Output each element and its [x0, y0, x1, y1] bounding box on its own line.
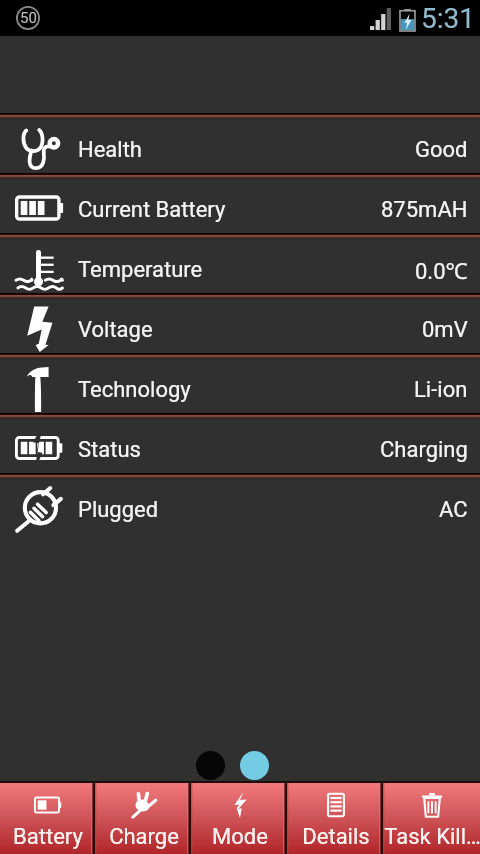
button[interactable]: Page 1 [196, 751, 225, 780]
staticText: Current Battery [78, 197, 226, 223]
staticText: Mode [212, 824, 268, 850]
staticText: Status [78, 437, 141, 463]
staticText: 50 [20, 9, 37, 27]
staticText: AC [439, 497, 468, 523]
button[interactable]: Temperature [0, 239, 480, 293]
button[interactable]: Status [0, 419, 480, 473]
staticText: 5:31 [421, 2, 475, 35]
staticText: Voltage [78, 317, 153, 343]
staticText: Battery [13, 824, 83, 850]
staticText: Task Kill… [384, 824, 480, 850]
staticText: Good [415, 137, 468, 163]
other: Mode [226, 791, 254, 819]
staticText: Technology [78, 377, 191, 403]
button[interactable]: Page 2 [240, 751, 269, 780]
button[interactable]: Details [288, 783, 384, 854]
other: Task Killer [418, 791, 446, 819]
staticText: Health [78, 137, 142, 163]
button[interactable]: Current Battery [0, 179, 480, 233]
button[interactable]: Technology [0, 359, 480, 413]
staticText: Temperature [78, 257, 203, 283]
other: Battery [34, 791, 62, 819]
button[interactable]: Task Killer [384, 783, 480, 854]
staticText: Charge [109, 824, 179, 850]
button[interactable]: Mode [192, 783, 288, 854]
staticText: Plugged [78, 497, 159, 523]
button[interactable]: Voltage [0, 299, 480, 353]
button[interactable]: Health [0, 119, 480, 173]
button[interactable]: Battery [0, 783, 96, 854]
staticText: 0.0℃ [415, 255, 468, 285]
staticText: 0mV [422, 317, 468, 343]
other: Details [322, 791, 350, 819]
button[interactable]: Plugged [0, 479, 480, 533]
staticText: 875mAH [381, 197, 468, 223]
staticText: Li-ion [414, 377, 468, 403]
button[interactable]: Charge [96, 783, 192, 854]
other: Charge [130, 791, 158, 819]
staticText: Details [302, 824, 370, 850]
staticText: Charging [380, 437, 468, 463]
